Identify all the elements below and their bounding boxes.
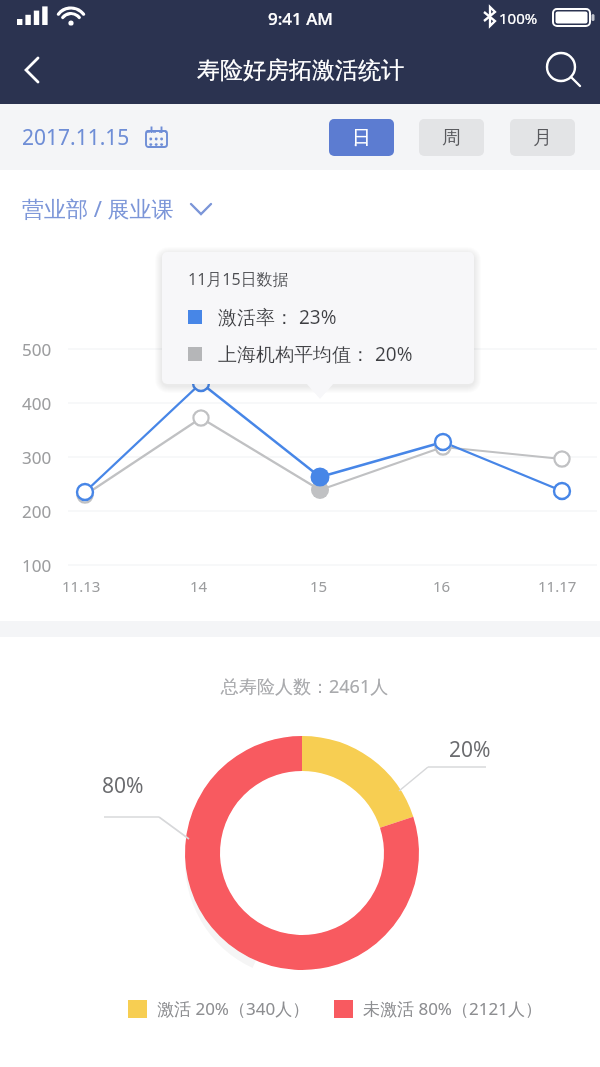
staticText: 激活 20%（340人） [157, 997, 310, 1020]
button[interactable]: Search [528, 36, 600, 104]
staticText: 2017.11.15 [22, 123, 130, 152]
staticText: 400 [22, 392, 52, 415]
staticText: 11.13 [62, 576, 101, 596]
button[interactable]: 营业部 / 展业课 [22, 180, 212, 236]
staticText: 11.17 [538, 576, 577, 596]
staticText: 300 [22, 446, 52, 469]
staticText: 9:41 AM [268, 7, 333, 30]
staticText: 日 [352, 126, 371, 150]
staticText: 100 [22, 554, 52, 577]
staticText: 总寿险人数：2461人 [221, 674, 389, 699]
staticText: 16 [433, 576, 451, 596]
staticText: 100% [499, 8, 538, 28]
staticText: 11月15日数据 [188, 268, 289, 290]
button[interactable]: 月 [510, 119, 575, 156]
staticText: 200 [22, 500, 52, 523]
button[interactable]: 周 [419, 119, 484, 156]
staticText: 15 [310, 576, 328, 596]
staticText: 80% [102, 771, 144, 800]
staticText: 20% [449, 735, 491, 764]
button[interactable]: Back [0, 36, 62, 104]
button[interactable]: 激活 20%（340人） [128, 997, 542, 1020]
staticText: 上海机构平均值： 20% [218, 341, 413, 367]
staticText: 周 [442, 126, 461, 150]
staticText: 寿险好房拓激活统计 [197, 56, 404, 85]
button[interactable]: 2017.11.15 [22, 123, 170, 152]
staticText: 500 [22, 338, 52, 361]
staticText: 14 [190, 576, 208, 596]
staticText: 激活率： 23% [218, 304, 337, 330]
button[interactable]: 日 [329, 119, 394, 156]
staticText: 月 [533, 126, 552, 150]
staticText: 未激活 80%（2121人） [363, 997, 542, 1020]
staticText: 营业部 / 展业课 [22, 193, 174, 223]
